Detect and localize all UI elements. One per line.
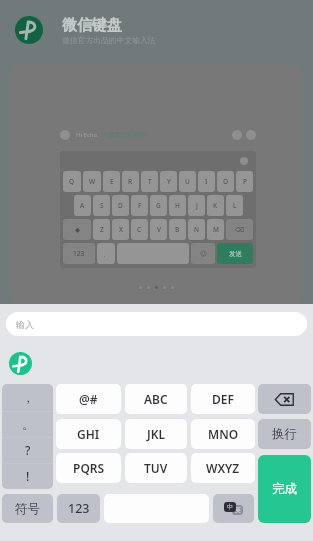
staticText: 中	[227, 503, 234, 511]
staticText: 换行	[272, 426, 297, 442]
staticText: 123	[68, 500, 90, 517]
staticText: Hi Echo,	[76, 131, 99, 139]
button[interactable]: 输入	[6, 312, 307, 336]
staticText: ◆	[75, 226, 80, 234]
button[interactable]: WXYZ	[191, 453, 255, 483]
staticText: ☺	[200, 250, 207, 258]
staticText: I	[205, 177, 208, 186]
staticText: 。	[22, 417, 34, 432]
button[interactable]: 123	[57, 494, 100, 523]
staticText: ABC	[144, 391, 168, 407]
staticText: ?	[25, 442, 31, 458]
staticText: 微信键盘	[62, 16, 122, 35]
button[interactable]: PQRS	[56, 453, 121, 483]
staticText: 输入	[16, 319, 34, 330]
staticText: 微信官方出品的中文输入法	[62, 35, 156, 45]
staticText: TUV	[144, 460, 168, 476]
button[interactable]: 完成	[258, 455, 311, 523]
button[interactable]: ，	[2, 384, 53, 411]
staticText: PQRS	[73, 460, 105, 476]
staticText: GHI	[77, 426, 100, 442]
staticText: Z	[100, 225, 104, 234]
staticText: J	[196, 201, 198, 210]
button[interactable]: Switch input language	[213, 494, 254, 523]
button[interactable]: 符号	[2, 494, 53, 523]
button[interactable]: TUV	[125, 453, 187, 483]
staticText: T	[148, 177, 152, 186]
button[interactable]: 。	[2, 411, 53, 437]
button[interactable]: DEF	[191, 384, 255, 414]
button[interactable]: JKL	[125, 419, 187, 449]
staticText: ⌫	[235, 226, 245, 234]
staticText: C	[137, 225, 142, 234]
staticText: O	[223, 177, 229, 186]
staticText: 完成	[272, 481, 297, 497]
staticText: WXYZ	[206, 460, 240, 476]
staticText: !	[26, 468, 30, 484]
staticText: 英	[235, 506, 241, 514]
staticText: M	[213, 225, 219, 234]
staticText: MNO	[208, 426, 239, 442]
staticText: Q	[69, 177, 75, 186]
button[interactable]: ?	[2, 437, 53, 463]
staticText: D	[118, 201, 123, 210]
staticText: 发送	[229, 250, 242, 258]
staticText: 今晚我们去哪吃?	[103, 131, 148, 139]
button[interactable]: GHI	[56, 419, 121, 449]
button[interactable]: WeChat keyboard logo	[9, 352, 32, 375]
staticText: S	[100, 201, 104, 210]
button[interactable]: MNO	[191, 419, 255, 449]
staticText: 123	[73, 249, 85, 258]
staticText: L	[233, 201, 237, 210]
button[interactable]: 换行	[258, 419, 311, 449]
staticText: G	[156, 201, 161, 210]
button[interactable]: @#	[56, 384, 121, 414]
staticText: Y	[167, 177, 171, 186]
staticText: N	[194, 225, 200, 234]
button[interactable]: !	[2, 463, 53, 489]
button[interactable]: ABC	[125, 384, 187, 414]
staticText: JKL	[147, 426, 166, 442]
staticText: U	[185, 177, 190, 186]
staticText: K	[213, 201, 218, 210]
staticText: X	[119, 225, 123, 234]
staticText: R	[128, 177, 133, 186]
staticText: E	[110, 177, 114, 186]
staticText: B	[175, 225, 180, 234]
staticText: W	[89, 177, 96, 186]
staticText: 、	[103, 250, 110, 258]
staticText: 符号	[15, 501, 40, 517]
staticText: P	[243, 177, 247, 186]
staticText: F	[138, 201, 142, 210]
staticText: @#	[79, 391, 98, 407]
staticText: DEF	[212, 391, 234, 407]
staticText: V	[157, 225, 161, 234]
staticText: H	[175, 201, 180, 210]
staticText: ，	[22, 390, 34, 405]
button[interactable]: Backspace	[258, 384, 311, 414]
staticText: A	[80, 201, 85, 210]
